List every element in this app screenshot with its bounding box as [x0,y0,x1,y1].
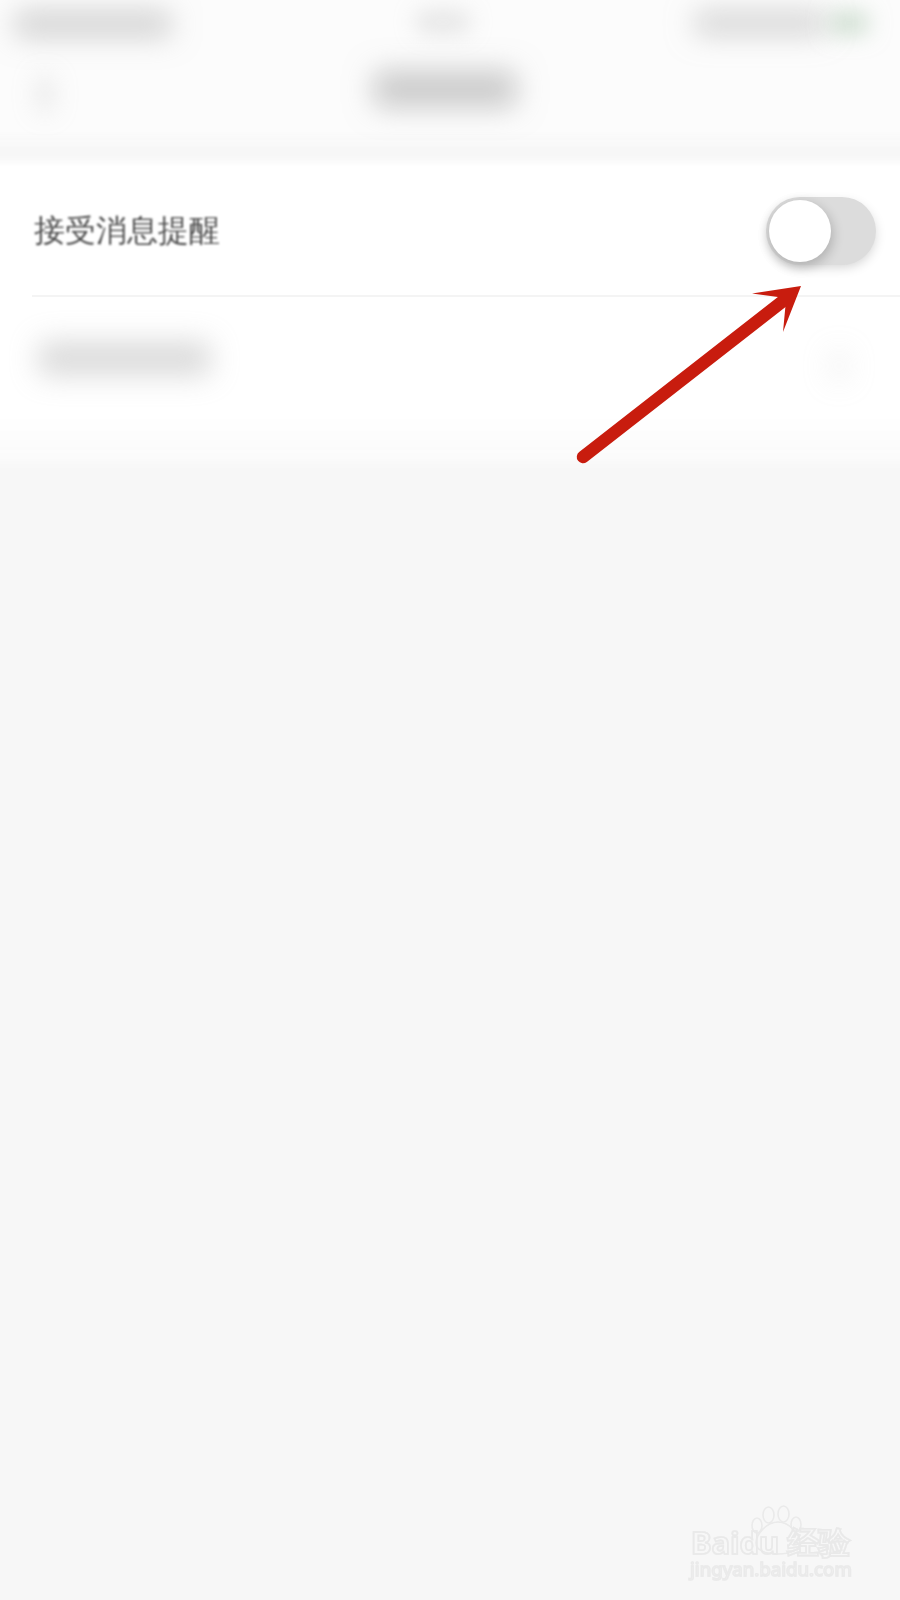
button[interactable]: 设置项 [0,297,900,416]
button[interactable]: 接受消息提醒 开关 [766,197,876,265]
staticText: jingyan.baidu.com [690,1556,852,1581]
button[interactable]: 接受消息提醒 [0,166,900,295]
staticText: Baidu 经验 [691,1521,850,1563]
staticText: 接受消息提醒 [34,211,220,250]
